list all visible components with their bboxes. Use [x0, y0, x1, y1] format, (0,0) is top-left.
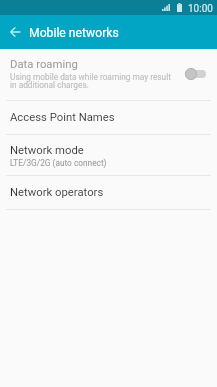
staticText: Access Point Names [10, 111, 115, 124]
button[interactable]: Network operators [0, 176, 217, 209]
staticText: LTE/3G/2G (auto connect) [10, 158, 107, 168]
staticText: 10:00 [188, 3, 213, 15]
staticText: Network operators [10, 186, 104, 199]
staticText: Using mobile data while roaming may resu… [10, 72, 172, 90]
staticText: Network mode [10, 144, 84, 157]
button[interactable]: Network mode [0, 135, 217, 175]
staticText: Mobile networks [29, 26, 119, 40]
button[interactable]: Navigate up [0, 15, 30, 49]
button[interactable]: Access Point Names [0, 101, 217, 134]
button[interactable]: Data roaming [0, 49, 217, 100]
staticText: Data roaming [10, 58, 78, 71]
